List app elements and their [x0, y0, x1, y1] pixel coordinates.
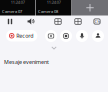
staticText: 11:24:07 — [47, 0, 61, 5]
button[interactable]: Pause — [3, 16, 16, 27]
staticText: Camera 07 — [2, 9, 22, 14]
button[interactable]: Profile — [92, 30, 104, 42]
button[interactable]: Layout — [71, 16, 84, 27]
button[interactable]: Mute — [24, 16, 37, 27]
button[interactable]: Multiview — [51, 16, 64, 27]
button[interactable]: Expand — [49, 44, 59, 52]
button[interactable]: Add camera — [72, 0, 108, 15]
button[interactable]: Record — [6, 30, 37, 41]
staticText: 11:24:07 — [11, 0, 25, 5]
button[interactable]: Snapshot — [45, 30, 57, 42]
button[interactable]: Camera 08 — [36, 0, 71, 15]
staticText: Record — [16, 32, 33, 39]
staticText: Camera 08 — [38, 9, 58, 14]
button[interactable]: Camera 07 — [0, 0, 35, 15]
button[interactable]: Channels — [90, 16, 103, 27]
button[interactable]: Record clip — [60, 30, 72, 42]
staticText: Ch — [94, 19, 99, 24]
staticText: Mesaje eveniment — [4, 58, 49, 66]
button[interactable]: Talk — [76, 30, 88, 42]
